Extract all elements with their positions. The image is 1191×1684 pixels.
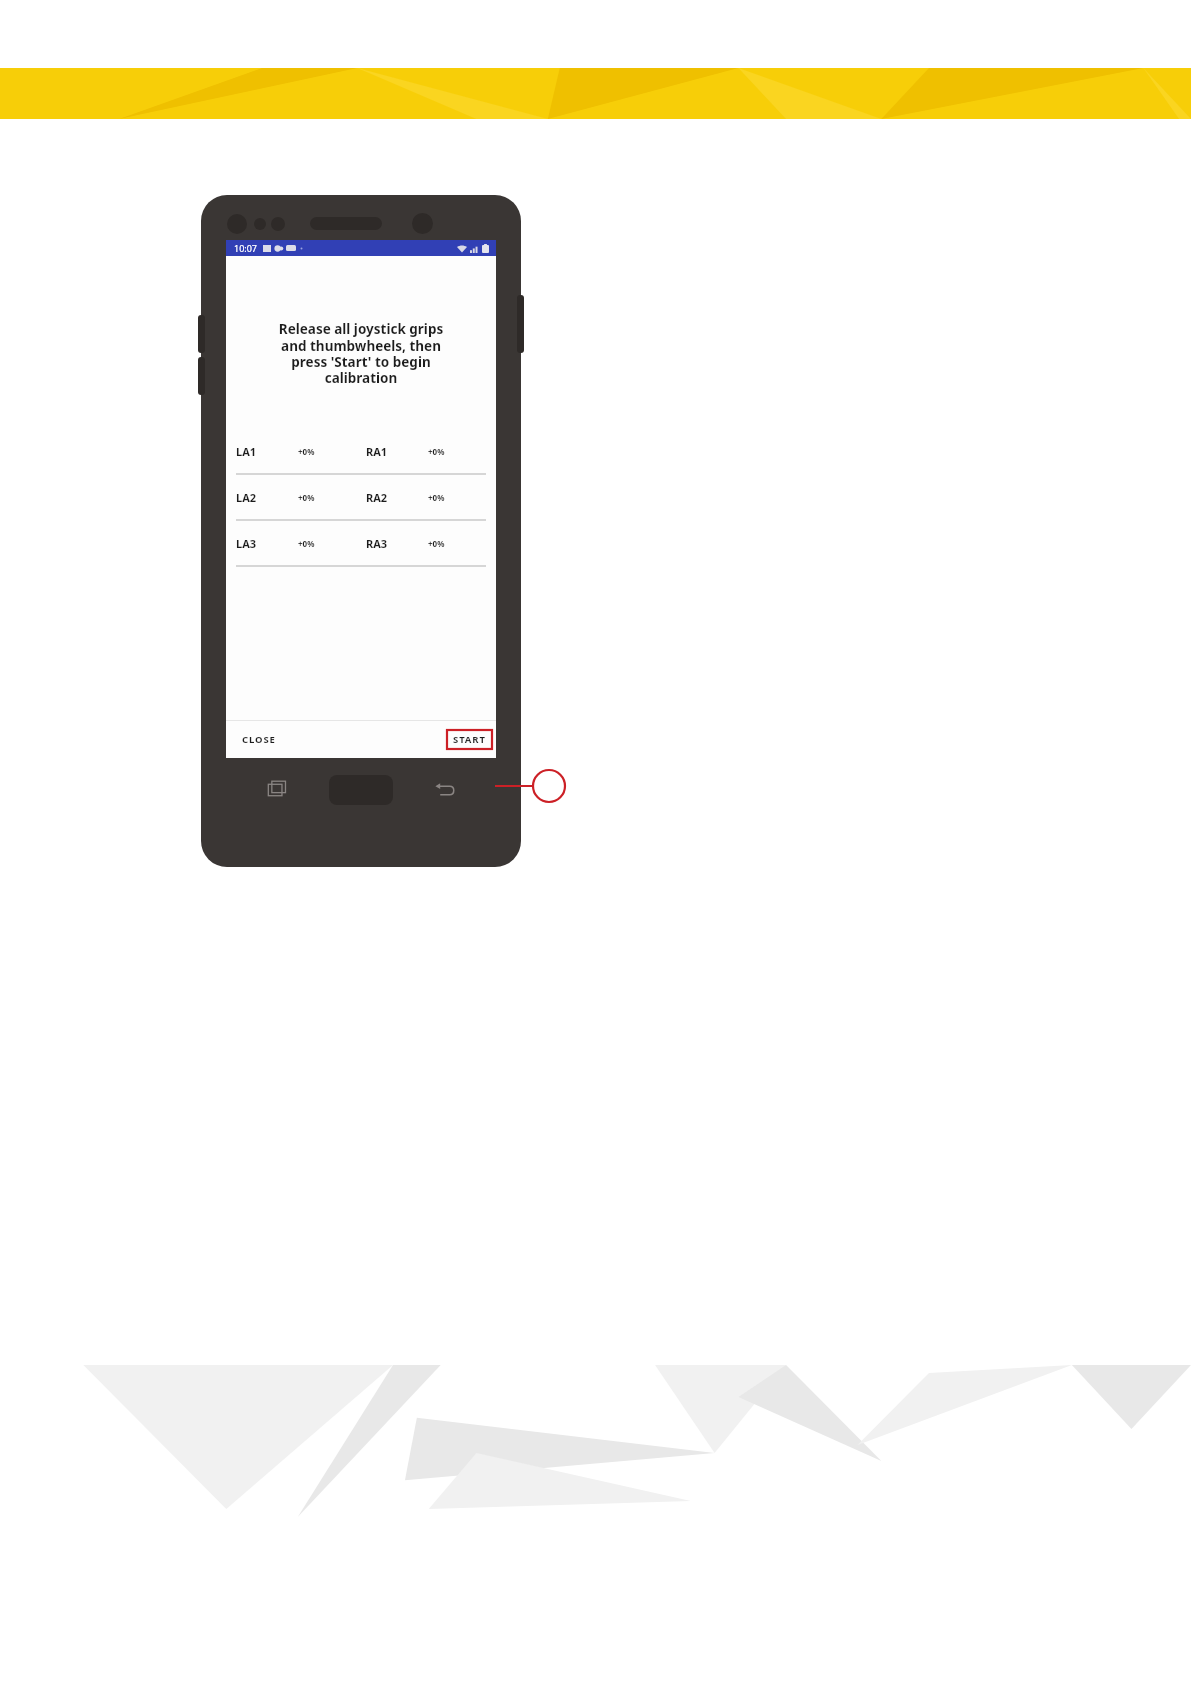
staticText: RA1 <box>366 444 388 459</box>
staticText: START <box>453 733 486 746</box>
staticText: +0% <box>298 446 315 457</box>
button[interactable]: Recents <box>258 770 298 810</box>
staticText: +0% <box>298 538 315 549</box>
button[interactable]: LA1 <box>226 429 496 473</box>
staticText: +0% <box>428 538 445 549</box>
staticText: RA2 <box>366 490 388 505</box>
staticText: CLOSE <box>242 733 276 746</box>
staticText: +0% <box>428 446 445 457</box>
staticText: Release all joystick grips and thumbwhee… <box>242 320 480 387</box>
staticText: LA3 <box>236 536 257 551</box>
button[interactable]: LA3 <box>226 521 496 565</box>
staticText: LA1 <box>236 444 257 459</box>
button[interactable]: START <box>447 730 492 749</box>
button[interactable]: Back <box>425 770 465 810</box>
staticText: LA2 <box>236 490 257 505</box>
staticText: 10:07 <box>234 242 258 254</box>
staticText: RA3 <box>366 536 388 551</box>
staticText: +0% <box>428 492 445 503</box>
button[interactable]: LA2 <box>226 475 496 519</box>
button[interactable]: CLOSE <box>238 729 280 750</box>
staticText: +0% <box>298 492 315 503</box>
